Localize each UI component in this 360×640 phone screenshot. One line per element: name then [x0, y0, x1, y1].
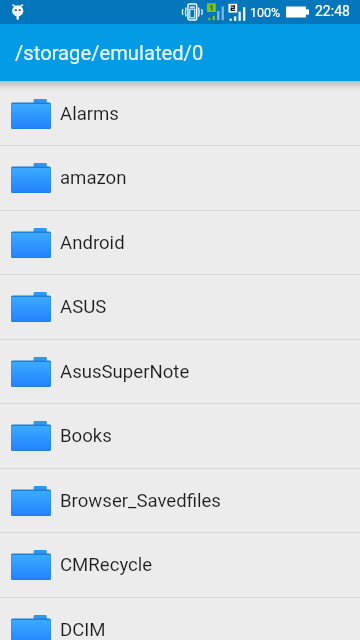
button[interactable]: Books	[0, 404, 360, 468]
staticText: Alarms	[60, 103, 119, 125]
staticText: Android	[60, 232, 125, 254]
button[interactable]: amazon	[0, 146, 360, 210]
button[interactable]: CMRecycle	[0, 533, 360, 597]
button[interactable]: ASUS	[0, 275, 360, 339]
button[interactable]: Alarms	[0, 82, 360, 145]
staticText: Books	[60, 425, 112, 447]
button[interactable]: Android	[0, 211, 360, 274]
staticText: AsusSuperNote	[60, 361, 190, 383]
staticText: 100%	[250, 5, 281, 20]
button[interactable]: AsusSuperNote	[0, 340, 360, 403]
staticText: Browser_Savedfiles	[60, 490, 221, 512]
staticText: ASUS	[60, 296, 107, 318]
button[interactable]: DCIM	[0, 598, 360, 640]
staticText: /storage/emulated/0	[15, 41, 204, 65]
staticText: 22:48	[315, 3, 350, 19]
button[interactable]: Browser_Savedfiles	[0, 469, 360, 532]
button[interactable]: /storage/emulated/0	[0, 24, 216, 81]
staticText: DCIM	[60, 619, 106, 640]
staticText: CMRecycle	[60, 554, 153, 576]
staticText: amazon	[60, 167, 127, 189]
